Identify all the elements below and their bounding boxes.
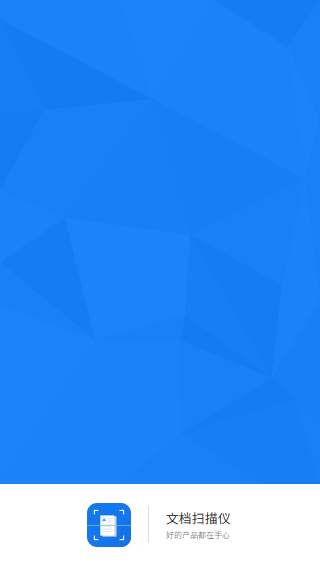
staticText: 文档扫描仪: [166, 508, 231, 527]
staticText: 好的产品都在手心: [166, 529, 230, 540]
